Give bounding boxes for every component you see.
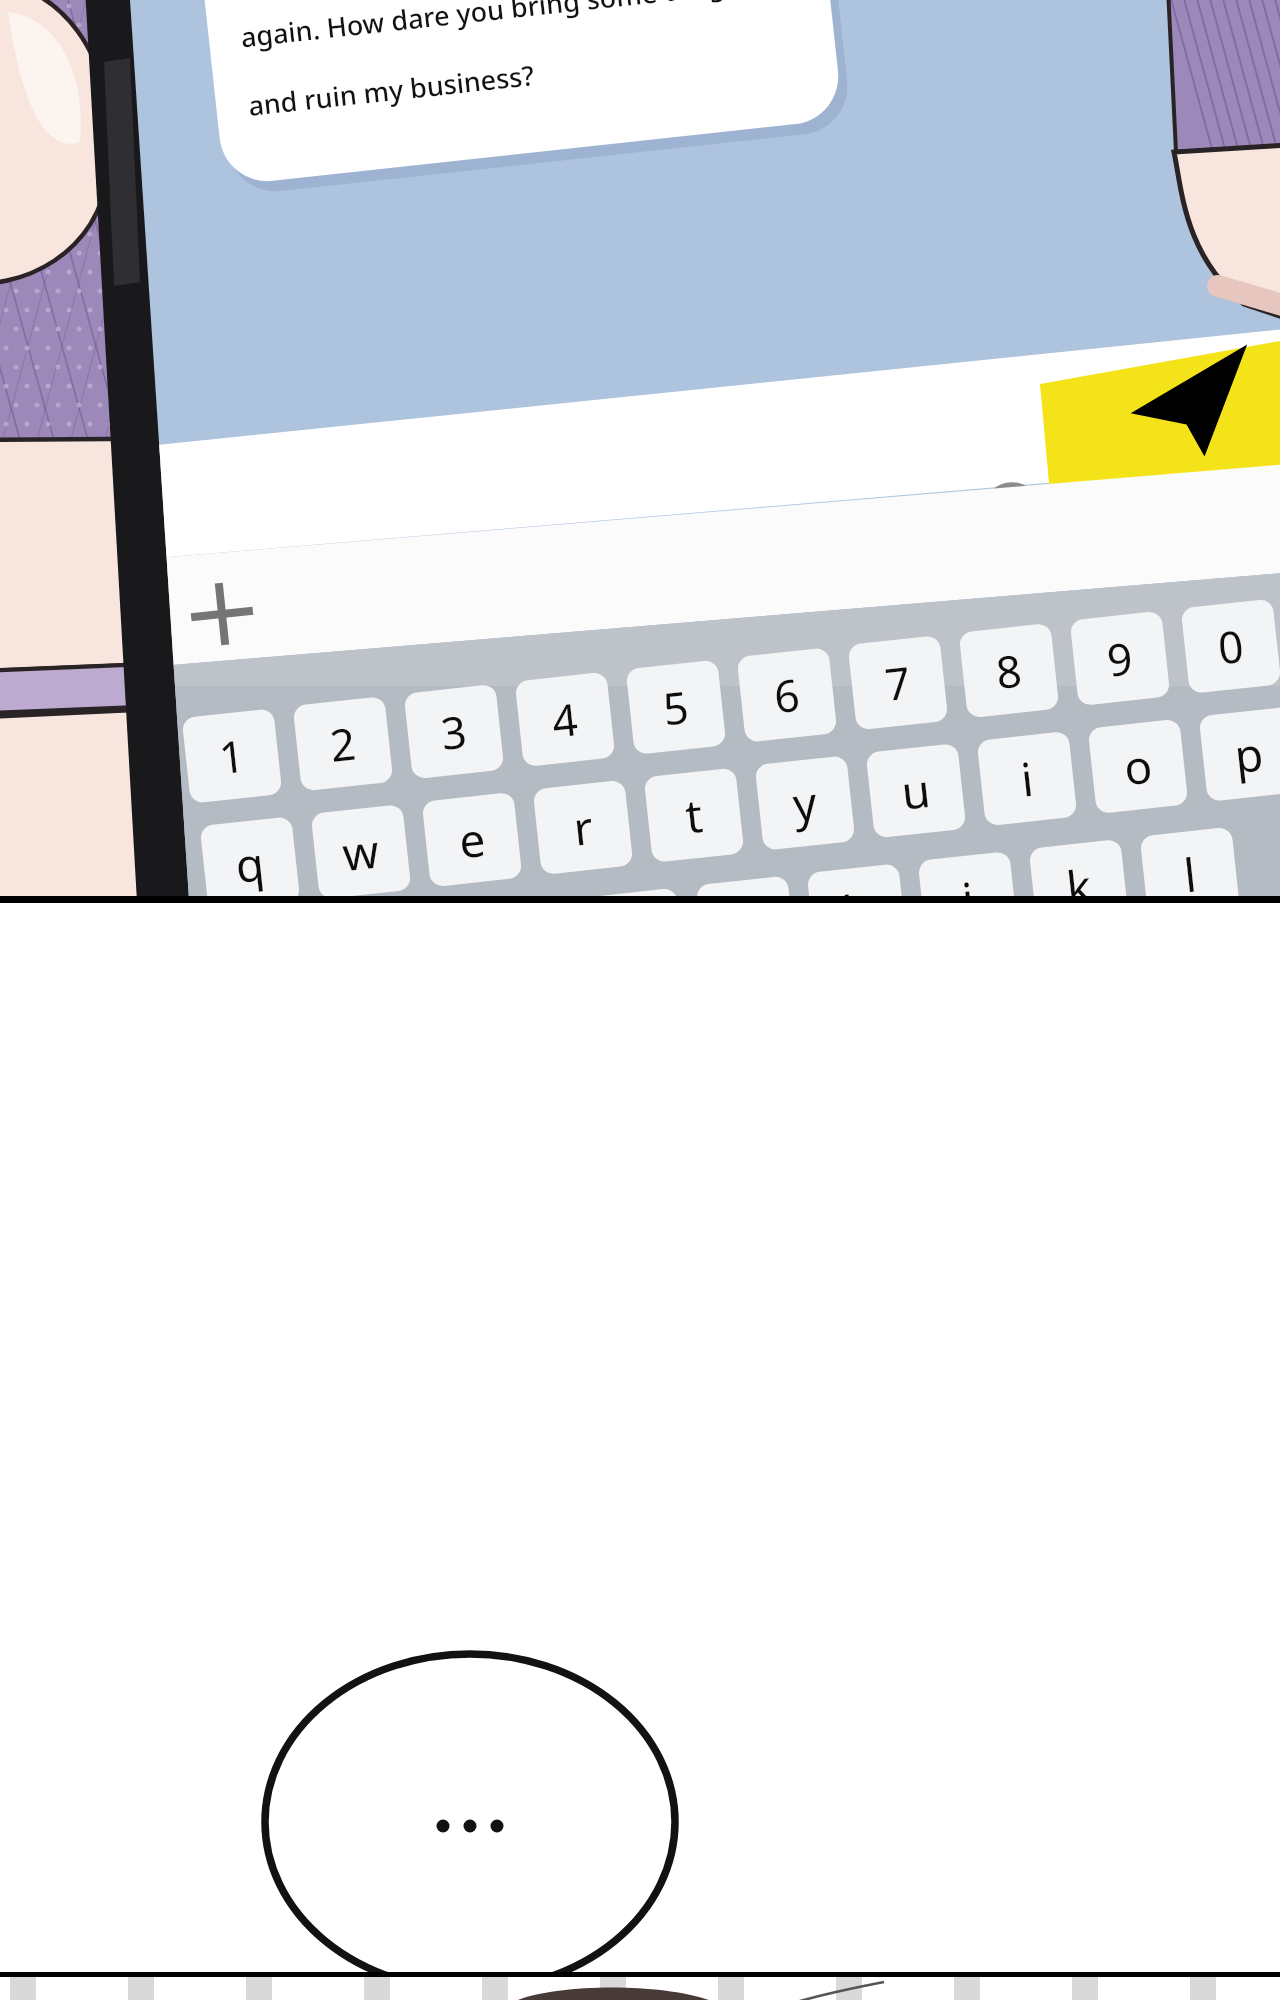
button[interactable]: Comic panel: phone chat screen with keyb…: [0, 0, 1280, 2000]
